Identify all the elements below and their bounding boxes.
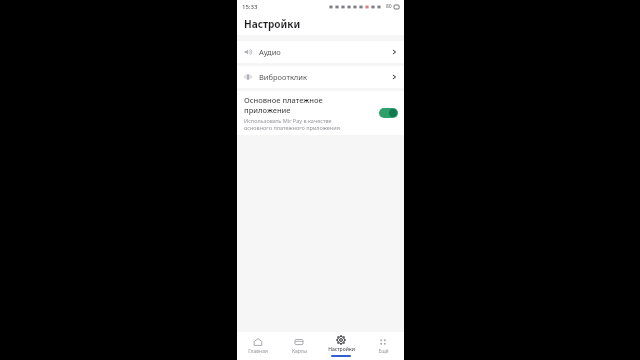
staticText: Настройки xyxy=(328,346,355,353)
staticText: Использовать Mir Pay в качестве xyxy=(244,117,332,124)
staticText: Ещё xyxy=(378,348,389,355)
button[interactable]: Карты xyxy=(278,332,320,360)
staticText: Аудио xyxy=(259,47,281,57)
staticText: Карты xyxy=(292,348,307,355)
button[interactable]: Аудио xyxy=(237,41,404,63)
staticText: Настройки xyxy=(244,17,301,31)
button[interactable]: Основное платежное xyxy=(237,91,404,135)
staticText: Главная xyxy=(248,348,268,355)
button[interactable]: Toggle default payment app xyxy=(379,108,398,118)
staticText: 15:33 xyxy=(242,3,258,11)
staticText: Виброотклик xyxy=(259,72,307,82)
staticText: приложение xyxy=(244,105,291,115)
button[interactable]: Ещё xyxy=(362,332,404,360)
button[interactable]: Настройки xyxy=(320,332,362,360)
staticText: 80 xyxy=(386,3,392,10)
staticText: основного платежного приложения xyxy=(244,124,340,131)
button[interactable]: Главная xyxy=(237,332,278,360)
button[interactable]: Виброотклик xyxy=(237,66,404,88)
staticText: Основное платежное xyxy=(244,95,323,105)
